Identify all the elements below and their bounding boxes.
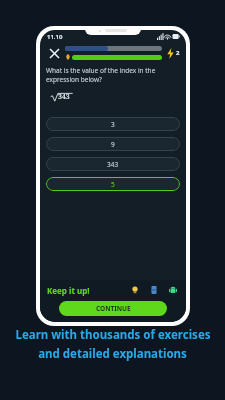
button[interactable]: Feedback bbox=[167, 284, 179, 296]
staticText: Keep it up! bbox=[47, 285, 90, 296]
staticText: and detailed explanations bbox=[38, 346, 187, 362]
staticText: What is the value of the index in the ex… bbox=[46, 66, 156, 84]
button[interactable]: 3 bbox=[46, 117, 180, 131]
button[interactable]: 5 bbox=[46, 177, 180, 191]
staticText: 343 bbox=[107, 160, 119, 169]
staticText: 9 bbox=[111, 140, 115, 149]
button[interactable]: 9 bbox=[46, 137, 180, 151]
staticText: 11.10 bbox=[47, 33, 63, 41]
staticText: 2 bbox=[176, 49, 180, 57]
staticText: Learn with thousands of exercises bbox=[15, 327, 211, 343]
staticText: 343 bbox=[58, 92, 70, 102]
button[interactable]: Report bbox=[148, 284, 160, 296]
staticText: CONTINUE bbox=[96, 304, 131, 313]
button[interactable]: Close bbox=[46, 45, 62, 61]
button[interactable]: CONTINUE bbox=[59, 301, 167, 316]
button[interactable]: 343 bbox=[46, 157, 180, 171]
staticText: 5 bbox=[111, 180, 115, 189]
button[interactable]: Hint bbox=[129, 284, 141, 296]
staticText: 3 bbox=[111, 120, 115, 129]
